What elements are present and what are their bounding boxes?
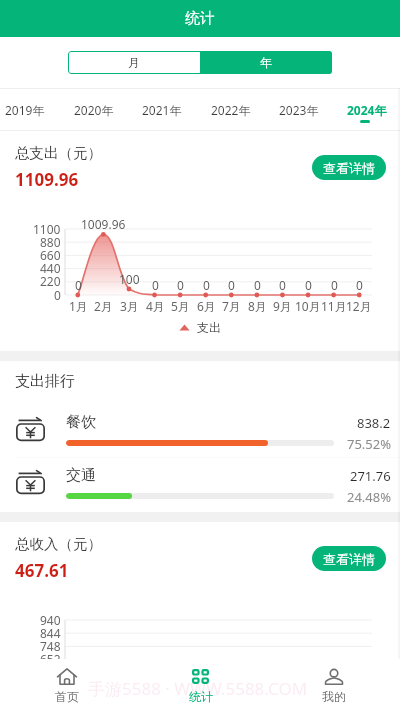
- staticText: 9月: [273, 298, 292, 314]
- staticText: 12月: [346, 298, 372, 314]
- staticText: 交通: [66, 466, 96, 485]
- staticText: 748: [40, 638, 61, 654]
- staticText: 查看详情: [323, 160, 375, 176]
- staticText: 10月: [295, 298, 321, 314]
- button[interactable]: 2024年: [333, 89, 400, 130]
- button[interactable]: Home: [0, 659, 134, 711]
- staticText: 2023年: [279, 102, 319, 118]
- staticText: 1109.96: [15, 168, 79, 191]
- staticText: 100: [119, 271, 140, 287]
- staticText: 0: [177, 277, 184, 293]
- button[interactable]: 年: [200, 51, 332, 74]
- staticText: 0: [279, 277, 286, 293]
- staticText: 940: [40, 612, 61, 628]
- button[interactable]: 2019年: [0, 89, 59, 130]
- staticText: 我的: [322, 689, 346, 704]
- staticText: 餐饮: [66, 413, 96, 432]
- staticText: 11月: [321, 298, 347, 314]
- staticText: 220: [40, 273, 61, 289]
- staticText: 0: [203, 277, 210, 293]
- staticText: 0: [356, 277, 363, 293]
- staticText: 660: [40, 247, 61, 263]
- button[interactable]: 2020年: [60, 89, 128, 130]
- staticText: 2月: [94, 298, 113, 314]
- button[interactable]: 2023年: [265, 89, 333, 130]
- button[interactable]: 查看详情: [312, 546, 386, 571]
- staticText: 24.48%: [347, 488, 392, 506]
- staticText: 1月: [69, 298, 88, 314]
- staticText: 4月: [146, 298, 165, 314]
- staticText: 0: [331, 277, 338, 293]
- button[interactable]: 餐饮: [0, 404, 400, 457]
- staticText: 1100: [33, 221, 61, 237]
- staticText: 支出排行: [15, 372, 75, 391]
- staticText: 5月: [171, 298, 190, 314]
- staticText: 首页: [55, 689, 79, 704]
- staticText: 652: [40, 651, 61, 667]
- staticText: 支出: [197, 320, 221, 335]
- staticText: 月: [128, 55, 140, 70]
- staticText: 0: [75, 277, 82, 293]
- staticText: 查看详情: [323, 551, 375, 567]
- staticText: 总支出（元）: [15, 144, 102, 162]
- button[interactable]: 2022年: [197, 89, 265, 130]
- staticText: 2021年: [142, 102, 182, 118]
- staticText: 1009.96: [81, 216, 126, 232]
- staticText: 8月: [248, 298, 267, 314]
- staticText: 0: [254, 277, 261, 293]
- staticText: 2024年: [347, 102, 387, 118]
- button[interactable]: 月: [68, 51, 200, 74]
- button[interactable]: Profile: [267, 659, 400, 711]
- staticText: 2020年: [74, 102, 114, 118]
- staticText: 年: [260, 55, 272, 70]
- staticText: 844: [40, 625, 61, 641]
- staticText: 7月: [222, 298, 241, 314]
- staticText: 271.76: [350, 467, 391, 485]
- staticText: 手游5588 · WWW.5588.COM: [88, 677, 308, 700]
- button[interactable]: 查看详情: [312, 155, 386, 180]
- staticText: 556: [40, 664, 61, 680]
- staticText: 467.61: [15, 559, 69, 582]
- staticText: 统计: [185, 9, 215, 28]
- staticText: 总收入（元）: [15, 535, 102, 553]
- button[interactable]: 2021年: [128, 89, 196, 130]
- staticText: 0: [54, 287, 61, 303]
- staticText: 3月: [120, 298, 139, 314]
- button[interactable]: 交通: [0, 457, 400, 510]
- staticText: 2022年: [211, 102, 251, 118]
- staticText: 0: [305, 277, 312, 293]
- staticText: 2019年: [5, 102, 45, 118]
- staticText: 0: [152, 277, 159, 293]
- staticText: 6月: [197, 298, 216, 314]
- staticText: 838.2: [357, 414, 391, 432]
- staticText: 0: [228, 277, 235, 293]
- staticText: 统计: [189, 689, 213, 704]
- staticText: 440: [40, 260, 61, 276]
- button[interactable]: Statistics: [134, 659, 267, 711]
- staticText: 75.52%: [347, 435, 392, 453]
- staticText: 460: [40, 678, 61, 694]
- staticText: 880: [40, 234, 61, 250]
